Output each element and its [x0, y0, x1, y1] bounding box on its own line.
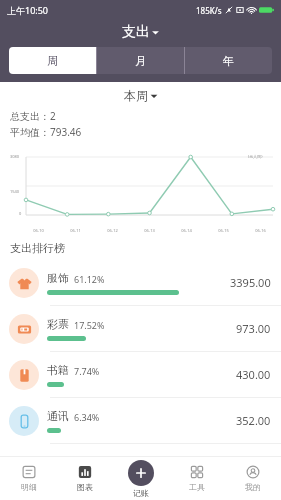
staticText: 06-12	[107, 228, 118, 233]
button[interactable]: 我的	[225, 456, 281, 500]
button[interactable]: 书籍	[0, 352, 281, 397]
staticText: 06-10	[33, 228, 44, 233]
staticText: 61.12%	[74, 273, 105, 285]
button[interactable]: 服饰	[0, 260, 281, 305]
staticText: 书籍	[47, 363, 69, 377]
staticText: 上午10:50	[7, 4, 49, 16]
button[interactable]: 月	[97, 47, 184, 74]
staticText: 支出排行榜	[10, 241, 65, 255]
staticText: 7.74%	[74, 365, 100, 377]
staticText: 我的	[245, 482, 261, 492]
staticText: 服饰	[47, 271, 69, 285]
staticText: 17.52%	[74, 319, 105, 331]
staticText: 图表	[77, 482, 93, 492]
button[interactable]: 年	[185, 47, 272, 74]
staticText: 总支出：2	[10, 109, 56, 123]
staticText: 年	[223, 54, 234, 68]
staticText: 周	[47, 54, 58, 68]
staticText: 通讯	[47, 409, 69, 423]
staticText: 月	[135, 54, 146, 68]
staticText: 06-11	[70, 228, 81, 233]
staticText: 973.00	[236, 321, 271, 336]
staticText: 352.00	[236, 413, 271, 428]
staticText: 0	[19, 211, 22, 216]
staticText: 06-15	[218, 228, 229, 233]
staticText: 本周	[124, 88, 148, 103]
staticText: 记账	[133, 488, 149, 498]
button[interactable]: 彩票	[0, 306, 281, 351]
staticText: 06-14	[181, 228, 192, 233]
staticText: 1540	[10, 189, 20, 194]
button[interactable]: 通讯	[0, 398, 281, 443]
staticText: 06-13	[144, 228, 155, 233]
staticText: 185K/s	[196, 5, 222, 16]
staticText: 3080	[10, 154, 20, 159]
button[interactable]: 明细	[0, 456, 57, 500]
staticText: 支出	[122, 23, 150, 41]
button[interactable]: 周	[9, 47, 96, 74]
staticText: 彩票	[47, 317, 69, 331]
staticText: 3395.00	[230, 275, 271, 290]
staticText: 明细	[21, 482, 37, 492]
staticText: 工具	[189, 482, 205, 492]
button[interactable]: 本周	[118, 86, 164, 105]
staticText: (元人民)	[248, 154, 263, 159]
button[interactable]: 支出	[116, 21, 166, 43]
button[interactable]: 工具	[169, 456, 225, 500]
button[interactable]: 图表	[57, 456, 113, 500]
staticText: 06-16	[255, 228, 266, 233]
staticText: 6.34%	[74, 411, 100, 423]
staticText: 430.00	[236, 367, 271, 382]
button[interactable]: 记账 Add record	[128, 459, 154, 498]
staticText: 平均值：793.46	[10, 125, 82, 139]
